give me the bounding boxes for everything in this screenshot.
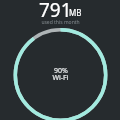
staticText: 90% bbox=[54, 66, 68, 76]
staticText: Wi-Fi bbox=[52, 73, 69, 83]
staticText: 791 bbox=[39, 0, 72, 23]
button[interactable]: Data usage, 90 percent of plan used on W… bbox=[0, 0, 120, 120]
staticText: MB bbox=[69, 7, 82, 18]
staticText: used this month bbox=[41, 19, 80, 26]
